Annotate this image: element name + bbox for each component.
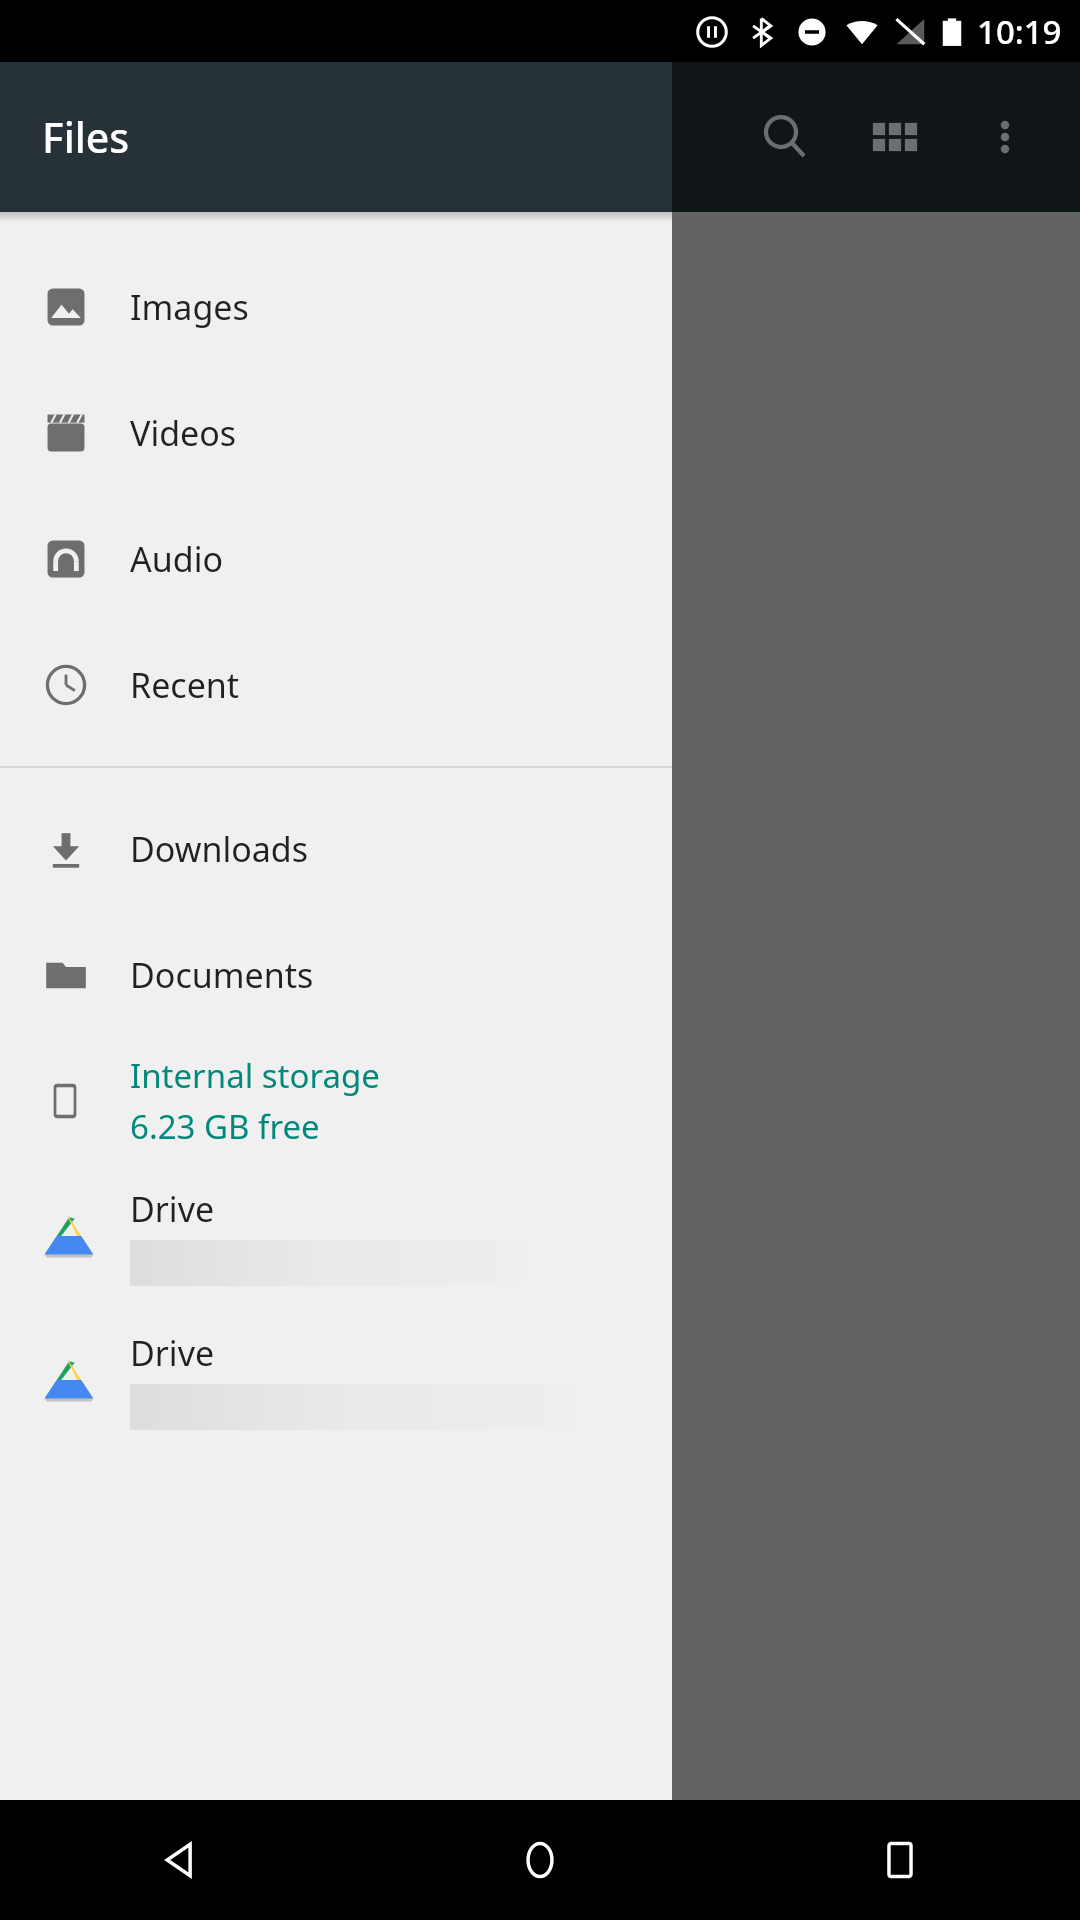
staticText: Recent [130, 662, 240, 708]
staticText: Drive [130, 1186, 215, 1232]
staticText: Documents [130, 952, 314, 998]
staticText: Drive [130, 1330, 215, 1376]
button[interactable]: Drive [0, 1308, 672, 1452]
button[interactable]: Back [120, 1800, 240, 1920]
button[interactable]: Recent apps [840, 1800, 960, 1920]
button[interactable]: Drive [0, 1164, 672, 1308]
staticText: Videos [130, 410, 237, 456]
staticText: Audio [130, 536, 223, 582]
button[interactable]: Audio [0, 496, 672, 622]
button[interactable]: Images [0, 244, 672, 370]
button[interactable]: Downloads [0, 786, 672, 912]
staticText: 6.23 GB free [130, 1104, 320, 1149]
staticText: Downloads [130, 826, 309, 872]
staticText: Images [130, 284, 249, 330]
staticText: 10:19 [977, 9, 1062, 54]
button[interactable]: Recent [0, 622, 672, 748]
button[interactable]: Videos [0, 370, 672, 496]
button[interactable]: Internal storage [0, 1038, 672, 1164]
button[interactable]: Search [730, 82, 840, 192]
staticText: Internal storage [130, 1053, 380, 1098]
staticText: Files [42, 109, 130, 165]
button[interactable]: More options [950, 82, 1060, 192]
button[interactable]: Grid view [840, 82, 950, 192]
button[interactable]: Home [480, 1800, 600, 1920]
button[interactable]: Documents [0, 912, 672, 1038]
